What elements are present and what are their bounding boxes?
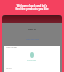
staticText: Sign in [28,27,36,30]
staticText: Terms [6,67,12,70]
staticText: Your order [6,46,17,49]
button[interactable]: Sign up here [26,38,39,41]
staticText: Protected [27,59,37,62]
staticText: Welcome back and let's find the products… [15,4,49,10]
staticText: Sign up here [26,38,39,41]
